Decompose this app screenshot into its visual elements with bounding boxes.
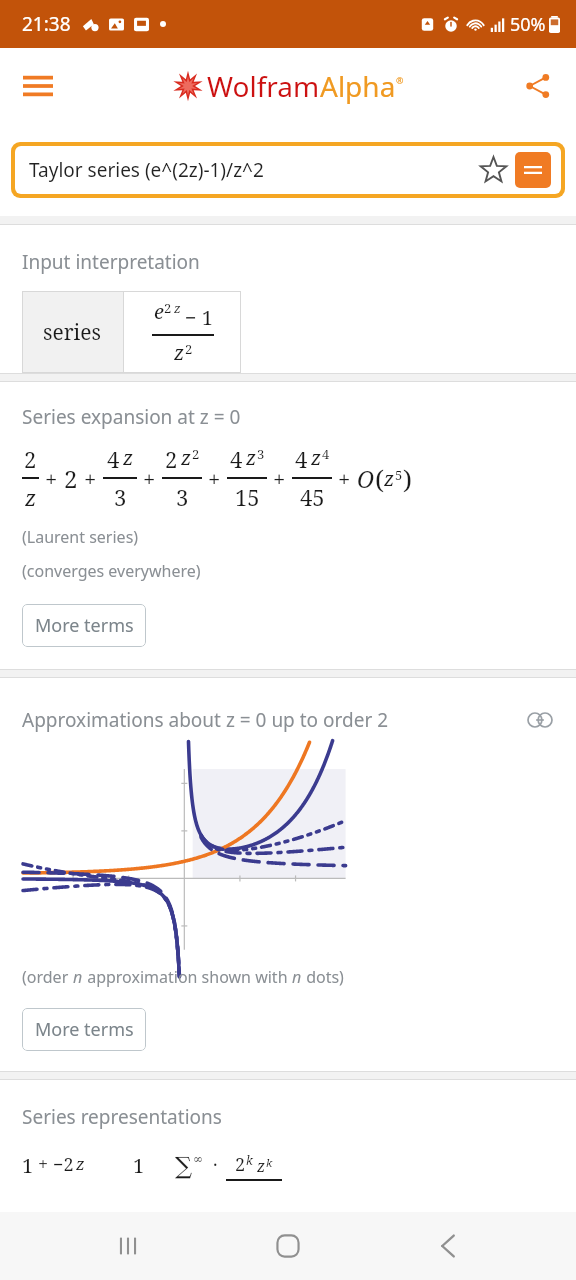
staticText: + [38, 1152, 49, 1177]
staticText: 4 [295, 444, 308, 474]
staticText: 15 [235, 482, 260, 512]
staticText: 2 [192, 445, 200, 463]
staticText: 2 [164, 299, 172, 317]
staticText: z [384, 465, 395, 492]
staticText: z [123, 444, 134, 471]
staticText: Wolfram [207, 67, 320, 105]
staticText: k [246, 1152, 253, 1168]
staticText: ) [403, 461, 412, 496]
staticText: −2 [53, 1152, 74, 1177]
button[interactable]: Recent apps [96, 1214, 160, 1278]
button[interactable]: Home [256, 1214, 320, 1278]
staticText: + [143, 463, 156, 493]
staticText: Alpha [320, 67, 396, 105]
staticText: O [357, 463, 375, 494]
staticText: + [45, 463, 58, 493]
button[interactable]: Keyboard [515, 152, 551, 188]
staticText: 50% [510, 12, 546, 37]
staticText: 2 [185, 340, 193, 358]
staticText: · [213, 1152, 218, 1177]
staticText: 1 [22, 1152, 34, 1179]
staticText: 4 [322, 445, 330, 463]
staticText: 2 [24, 444, 37, 474]
staticText: (order [22, 966, 73, 988]
button[interactable]: Taylor series (e^(2z)-1)/z^2 [15, 146, 561, 194]
button[interactable]: More terms [22, 604, 146, 647]
staticText: z [257, 1155, 266, 1177]
staticText: 2 [165, 444, 178, 474]
staticText: n [73, 966, 83, 988]
staticText: 2 [235, 1152, 246, 1177]
staticText: (Laurent series) [22, 526, 139, 548]
staticText: + [208, 463, 221, 493]
staticText: Series expansion at z = 0 [22, 404, 241, 430]
staticText: (converges everywhere) [22, 560, 201, 582]
staticText: k [266, 1155, 273, 1170]
staticText: More terms [35, 1017, 134, 1042]
staticText: 21:38 [22, 11, 71, 37]
staticText: 3 [176, 482, 189, 512]
staticText: Taylor series (e^(2z)-1)/z^2 [29, 157, 471, 183]
staticText: ® [396, 74, 404, 86]
staticText: z [174, 339, 185, 366]
button[interactable]: Share [512, 60, 564, 112]
button[interactable]: Back [416, 1214, 480, 1278]
staticText: Series representations [22, 1104, 222, 1130]
staticText: series [43, 318, 102, 347]
staticText: e [154, 298, 164, 325]
staticText: + [84, 463, 97, 493]
button[interactable]: More terms [22, 1008, 146, 1051]
staticText: 1 [133, 1152, 145, 1179]
staticText: More terms [35, 613, 134, 638]
staticText: dots) [302, 966, 344, 988]
button[interactable]: Favorite [471, 148, 515, 192]
staticText: 4 [230, 444, 243, 474]
staticText: 3 [257, 445, 265, 463]
button[interactable]: Copy link [520, 700, 560, 740]
staticText: 3 [114, 482, 127, 512]
staticText: z [246, 444, 257, 471]
staticText: Input interpretation [22, 249, 200, 275]
staticText: 2 [64, 462, 78, 495]
staticText: ( [375, 461, 384, 496]
staticText: approximation shown with [83, 966, 292, 988]
staticText: z [76, 1152, 85, 1175]
staticText: − 1 [185, 304, 213, 331]
staticText: z [25, 482, 37, 512]
staticText: 4 [107, 444, 120, 474]
staticText: n [292, 966, 302, 988]
staticText: + [338, 463, 351, 493]
button[interactable]: Menu [10, 58, 66, 114]
staticText: + [273, 463, 286, 493]
staticText: 45 [300, 482, 325, 512]
staticText: z [181, 444, 192, 471]
staticText: z [311, 444, 322, 471]
staticText: ∞ [193, 1152, 203, 1166]
staticText: z [174, 299, 181, 317]
staticText: ∑ [175, 1152, 193, 1180]
staticText: 5 [395, 466, 403, 484]
staticText: Approximations about z = 0 up to order 2 [22, 707, 520, 733]
